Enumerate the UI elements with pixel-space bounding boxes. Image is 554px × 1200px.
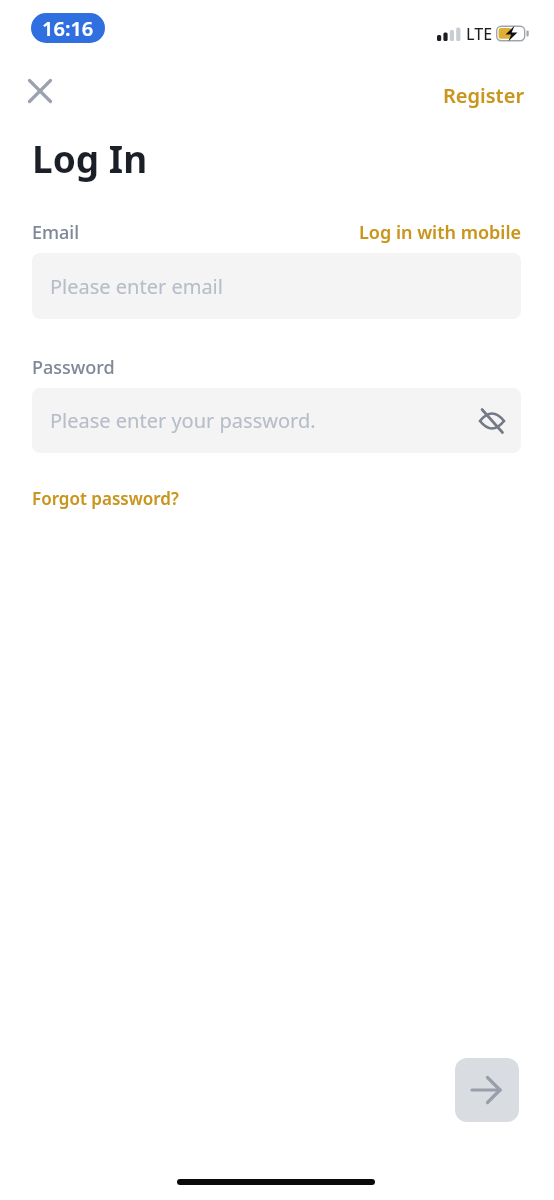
button[interactable]: Please enter email <box>32 253 521 319</box>
button[interactable] <box>18 69 62 113</box>
staticText: Please enter email <box>50 273 223 300</box>
button[interactable]: Register <box>443 82 525 109</box>
staticText: 16:16 <box>42 15 94 42</box>
button[interactable]: Forgot password? <box>32 487 179 510</box>
button[interactable]: Log in with mobile <box>359 220 522 245</box>
staticText: Log In <box>32 133 148 183</box>
button[interactable] <box>455 1058 519 1122</box>
staticText: Email <box>32 220 80 245</box>
staticText: Please enter your password. <box>50 407 316 434</box>
staticText: LTE <box>466 23 493 45</box>
button[interactable] <box>477 406 507 436</box>
button[interactable]: 16:16 <box>31 13 105 43</box>
staticText: Password <box>32 355 115 380</box>
button[interactable]: Please enter your password. <box>32 388 521 453</box>
